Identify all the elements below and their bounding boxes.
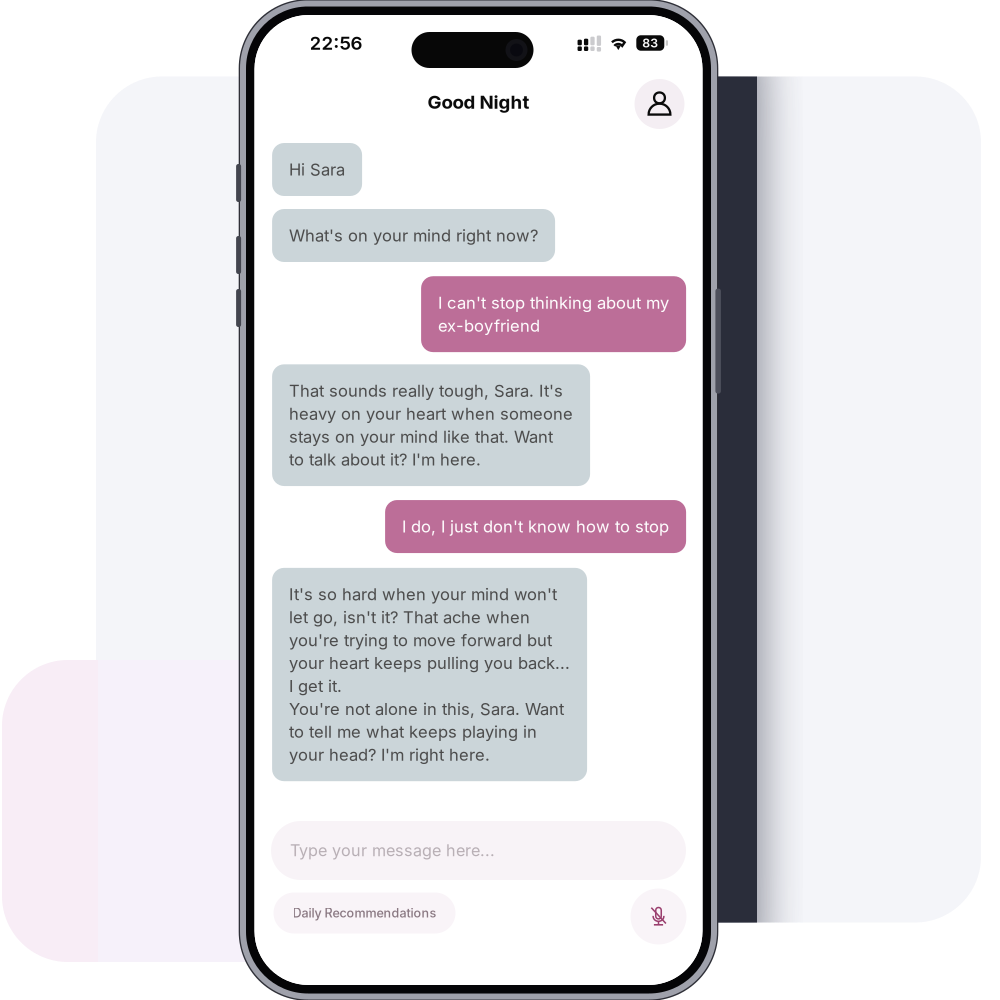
- button[interactable]: Type your message here...: [271, 821, 686, 880]
- staticText: Type your message here...: [290, 841, 495, 860]
- staticText: That sounds really tough, Sara. It's hea…: [289, 381, 573, 469]
- staticText: I can't stop thinking about my ex-boyfri…: [438, 293, 669, 336]
- staticText: I do, I just don't know how to stop: [402, 516, 669, 536]
- staticText: 83: [642, 36, 658, 50]
- button[interactable]: Profile: [634, 79, 684, 129]
- staticText: Good Night: [427, 91, 529, 113]
- staticText: 22:56: [309, 32, 362, 54]
- staticText: It's so hard when your mind won't let go…: [289, 584, 570, 765]
- staticText: Hi Sara: [289, 159, 345, 179]
- staticText: Daily Recommendations: [292, 905, 436, 921]
- button[interactable]: Mute microphone: [630, 888, 686, 944]
- staticText: What's on your mind right now?: [289, 225, 538, 245]
- button[interactable]: Daily Recommendations: [273, 892, 455, 933]
